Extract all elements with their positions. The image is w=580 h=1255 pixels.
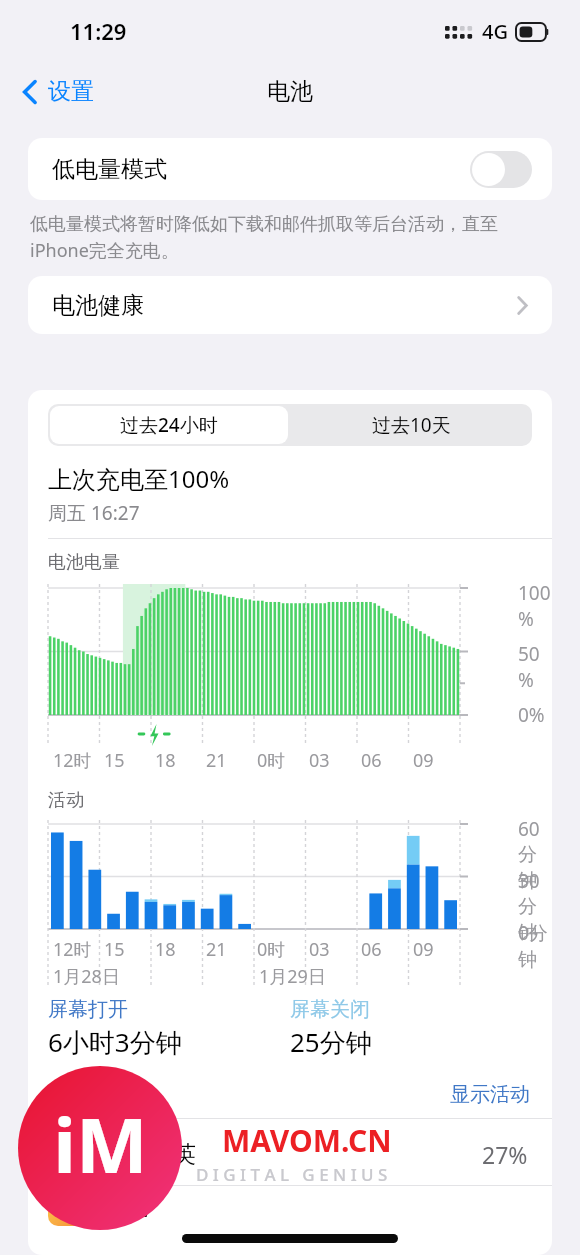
staticText: D I G I T A L G E N I U S [196, 1163, 388, 1186]
staticText: 03 [309, 748, 330, 773]
staticText: 活动 [48, 789, 84, 812]
staticText: 低电量模式 [52, 155, 167, 184]
staticText: 设置 [48, 77, 94, 106]
staticText: 11:29 [70, 16, 127, 46]
staticText: iM [53, 1092, 148, 1196]
staticText: 18 [155, 937, 176, 962]
staticText: 25分钟 [290, 1024, 372, 1060]
staticText: 1月29日 [259, 964, 326, 989]
staticText: 电池电量 [48, 551, 120, 574]
staticText: 15 [104, 748, 125, 773]
staticText: 60分钟 [518, 816, 552, 893]
button[interactable]: 和平精英 [28, 1123, 552, 1185]
staticText: 0分钟 [518, 920, 552, 972]
staticText: 0时 [257, 937, 286, 962]
button[interactable]: 低电量模式 [28, 138, 552, 200]
staticText: 27% [482, 1139, 528, 1170]
staticText: MAVOM.CN [222, 1120, 392, 1161]
staticText: 21 [206, 748, 227, 773]
staticText: 过去10天 [372, 412, 451, 438]
staticText: 100% [518, 580, 552, 632]
button[interactable]: 过去24小时 [50, 406, 288, 444]
staticText: 4G [482, 18, 508, 45]
button[interactable]: 过去10天 [290, 404, 532, 446]
staticText: 和平精英 [104, 1140, 196, 1169]
staticText: 50% [518, 641, 552, 693]
button[interactable]: 电池健康 [28, 276, 552, 334]
staticText: 06 [361, 937, 382, 962]
staticText: 09 [413, 937, 434, 962]
staticText: 0% [518, 702, 545, 728]
staticText: 03 [309, 937, 330, 962]
staticText: 周五 16:27 [48, 500, 140, 526]
staticText: 会玩 [102, 1192, 148, 1221]
staticText: 过去24小时 [120, 412, 218, 438]
staticText: 电池 [267, 77, 313, 106]
staticText: 屏幕打开 [48, 997, 128, 1022]
staticText: 12时 [53, 937, 92, 962]
staticText: 0时 [257, 748, 286, 773]
staticText: 30分钟 [518, 868, 552, 945]
button[interactable]: 低电量模式开关 [470, 151, 532, 188]
button[interactable]: 显示活动 [28, 1070, 552, 1118]
staticText: 06 [361, 748, 382, 773]
staticText: 低电量模式将暂时降低如下载和邮件抓取等后台活动，直至 iPhone完全充电。 [30, 213, 556, 262]
staticText: 12时 [53, 748, 92, 773]
staticText: 显示活动 [450, 1082, 530, 1107]
staticText: 09 [413, 748, 434, 773]
staticText: 6小时3分钟 [48, 1024, 182, 1060]
staticText: 15 [104, 937, 125, 962]
staticText: 电池健康 [52, 291, 144, 320]
staticText: 18 [155, 748, 176, 773]
staticText: 21 [206, 937, 227, 962]
button[interactable]: 设置 [14, 71, 102, 112]
button[interactable]: 会玩 [28, 1186, 552, 1226]
staticText: 上次充电至100% [48, 462, 230, 495]
staticText: 屏幕关闭 [290, 997, 370, 1022]
staticText: 1月28日 [53, 964, 120, 989]
